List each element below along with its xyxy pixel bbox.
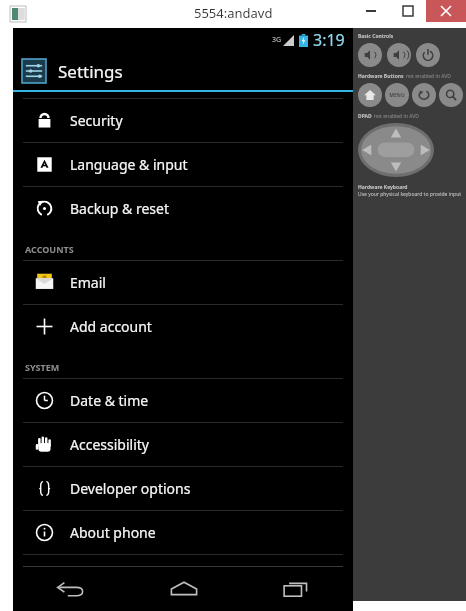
button[interactable]: Backup & reset	[13, 187, 353, 230]
staticText: not enabled in AVD	[406, 73, 451, 80]
staticText: ACCOUNTS	[25, 243, 74, 255]
staticText: Use your physical keyboard to provide in…	[358, 191, 462, 198]
staticText: Date & time	[70, 391, 149, 410]
staticText: MENU	[389, 92, 405, 99]
button[interactable]: Volume up	[358, 43, 382, 67]
button[interactable]: Settings	[13, 52, 353, 90]
button[interactable]: MENU	[385, 83, 409, 107]
staticText: About phone	[70, 523, 156, 542]
button[interactable]: D-pad	[358, 123, 434, 177]
button[interactable]: Accessibility	[13, 423, 353, 466]
staticText: SYSTEM	[25, 361, 60, 373]
button[interactable]: Home	[127, 567, 240, 611]
button[interactable]: Email	[13, 261, 353, 304]
button[interactable]: Date & time	[13, 379, 353, 422]
button[interactable]: Back	[412, 83, 436, 107]
staticText: Accessibility	[70, 435, 149, 454]
button[interactable]: Close	[426, 0, 466, 22]
staticText: Backup & reset	[70, 199, 169, 218]
button[interactable]: Security	[13, 99, 353, 142]
staticText: Hardware Buttons	[358, 73, 404, 80]
button[interactable]: Maximize	[389, 0, 426, 22]
button[interactable]: Home	[358, 83, 382, 107]
button[interactable]: About phone	[13, 511, 353, 554]
button[interactable]: Language & input	[13, 143, 353, 186]
button[interactable]: Back	[13, 567, 127, 611]
staticText: not enabled in AVD	[374, 113, 419, 120]
button[interactable]: Developer options	[13, 467, 353, 510]
button[interactable]: Volume down	[387, 43, 411, 67]
staticText: Email	[70, 273, 106, 292]
staticText: DPAD	[358, 113, 372, 120]
staticText: Security	[70, 111, 123, 130]
button[interactable]: Search	[439, 83, 463, 107]
staticText: Language & input	[70, 155, 188, 174]
staticText: 5554:andavd	[194, 4, 273, 22]
button[interactable]: Recent apps	[240, 567, 353, 611]
button[interactable]: Add account	[13, 305, 353, 348]
button[interactable]: Power	[416, 43, 440, 67]
staticText: Add account	[70, 317, 152, 336]
staticText: Hardware Keyboard	[358, 184, 408, 191]
staticText: Basic Controls	[358, 33, 394, 40]
staticText: Settings	[58, 60, 123, 83]
button[interactable]: Minimize	[352, 0, 389, 22]
staticText: Developer options	[70, 479, 191, 498]
staticText: 3G	[272, 35, 282, 45]
staticText: 3:19	[313, 29, 345, 51]
